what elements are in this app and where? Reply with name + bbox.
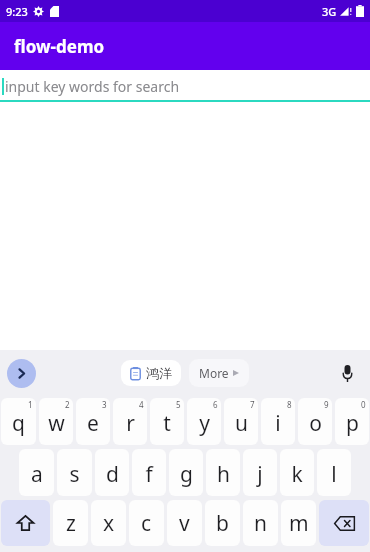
staticText: j <box>257 460 263 489</box>
button[interactable]: x <box>91 500 126 546</box>
staticText: t <box>163 409 171 438</box>
staticText: c <box>141 509 152 538</box>
button[interactable]: v <box>167 500 202 546</box>
button[interactable]: t <box>150 398 184 445</box>
staticText: input key words for search <box>5 77 180 96</box>
button[interactable]: c <box>129 500 164 546</box>
button[interactable]: o <box>298 398 332 445</box>
button[interactable]: a <box>19 449 54 496</box>
button[interactable]: Shift <box>1 500 50 546</box>
staticText: 6 <box>213 399 218 410</box>
staticText: r <box>126 409 135 438</box>
staticText: 0 <box>361 399 366 410</box>
button[interactable]: u <box>224 398 258 445</box>
staticText: p <box>346 409 359 438</box>
staticText: b <box>216 509 229 538</box>
staticText: l <box>331 460 337 489</box>
button[interactable]: d <box>95 449 129 496</box>
staticText: g <box>180 460 193 489</box>
staticText: 鸿洋 <box>146 365 172 381</box>
staticText: h <box>217 460 230 489</box>
button[interactable]: w <box>39 398 73 445</box>
staticText: 7 <box>250 399 255 410</box>
staticText: s <box>69 460 80 489</box>
staticText: 5 <box>176 399 181 410</box>
button[interactable]: p <box>335 398 369 445</box>
button[interactable]: 鸿洋 <box>121 360 181 386</box>
button[interactable]: h <box>206 449 240 496</box>
button[interactable]: Expand suggestions <box>7 359 36 388</box>
staticText: q <box>12 409 25 438</box>
staticText: z <box>66 509 76 538</box>
staticText: m <box>289 509 309 538</box>
button[interactable]: More <box>189 359 249 387</box>
staticText: e <box>87 409 99 438</box>
button[interactable]: Voice input <box>333 359 361 387</box>
staticText: f <box>145 460 153 489</box>
button[interactable]: input key words for search <box>0 70 370 102</box>
button[interactable]: g <box>169 449 203 496</box>
staticText: 1 <box>28 399 33 410</box>
button[interactable]: f <box>132 449 166 496</box>
button[interactable]: k <box>280 449 314 496</box>
staticText: 2 <box>65 399 70 410</box>
button[interactable]: q <box>1 398 36 445</box>
button[interactable]: r <box>113 398 147 445</box>
staticText: v <box>179 509 190 538</box>
button[interactable]: s <box>57 449 92 496</box>
button[interactable]: i <box>261 398 295 445</box>
staticText: n <box>254 509 267 538</box>
button[interactable]: n <box>243 500 278 546</box>
button[interactable]: e <box>76 398 110 445</box>
button[interactable]: y <box>187 398 221 445</box>
staticText: w <box>48 409 65 438</box>
staticText: k <box>291 460 303 489</box>
staticText: u <box>235 409 248 438</box>
button[interactable]: l <box>317 449 351 496</box>
staticText: flow-demo <box>14 35 105 58</box>
button[interactable]: Backspace <box>319 500 369 546</box>
staticText: 3G <box>322 4 337 19</box>
staticText: a <box>31 460 43 489</box>
staticText: x <box>103 509 115 538</box>
staticText: 8 <box>287 399 292 410</box>
button[interactable]: m <box>281 500 316 546</box>
staticText: o <box>309 409 322 438</box>
staticText: i <box>275 409 281 438</box>
staticText: 9 <box>324 399 329 410</box>
button[interactable]: j <box>243 449 277 496</box>
staticText: 9:23 <box>6 4 28 19</box>
staticText: d <box>106 460 119 489</box>
staticText: 4 <box>139 399 144 410</box>
staticText: 3 <box>102 399 107 410</box>
staticText: y <box>199 409 210 438</box>
button[interactable]: b <box>205 500 240 546</box>
button[interactable]: z <box>53 500 88 546</box>
staticText: More <box>199 365 229 381</box>
